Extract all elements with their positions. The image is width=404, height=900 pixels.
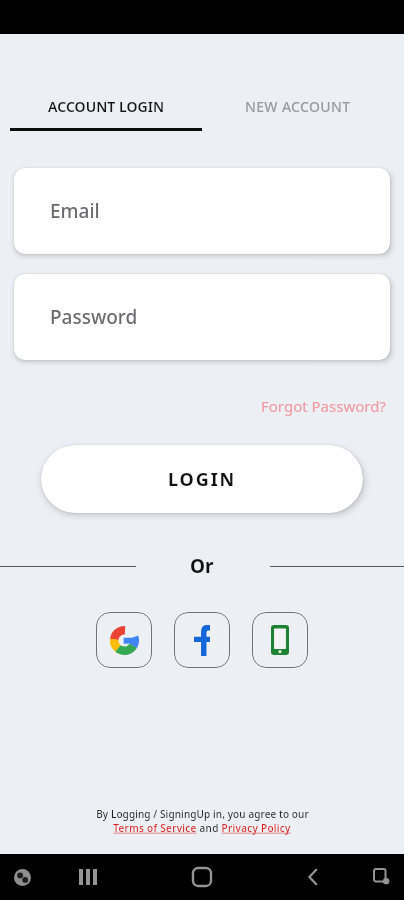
staticText: Or — [190, 553, 214, 579]
button[interactable]: Terms of Service and Privacy Policy — [113, 821, 291, 835]
staticText: ACCOUNT LOGIN — [48, 97, 165, 116]
button[interactable]: Sign in with phone — [252, 612, 308, 668]
button[interactable]: Sign in with Facebook — [174, 612, 230, 668]
button[interactable]: Assistant — [10, 865, 34, 889]
button[interactable]: LOGIN — [41, 445, 363, 513]
button[interactable]: Forgot Password? — [259, 394, 388, 418]
button[interactable]: Back — [300, 864, 326, 890]
staticText: LOGIN — [168, 467, 237, 492]
button[interactable]: Email — [14, 168, 390, 254]
button[interactable]: ACCOUNT LOGIN — [10, 97, 202, 131]
button[interactable]: Sign in with Google — [96, 612, 152, 668]
staticText: Email — [50, 198, 100, 224]
button[interactable]: Home — [187, 862, 217, 892]
staticText: NEW ACCOUNT — [245, 97, 351, 116]
button[interactable]: Recent apps — [75, 864, 101, 890]
staticText: By Logging / SigningUp in, you agree to … — [96, 807, 309, 821]
button[interactable]: Password — [14, 274, 390, 360]
staticText: Password — [50, 304, 138, 330]
button[interactable]: Screenshot — [369, 864, 395, 890]
button[interactable]: NEW ACCOUNT — [202, 97, 394, 131]
